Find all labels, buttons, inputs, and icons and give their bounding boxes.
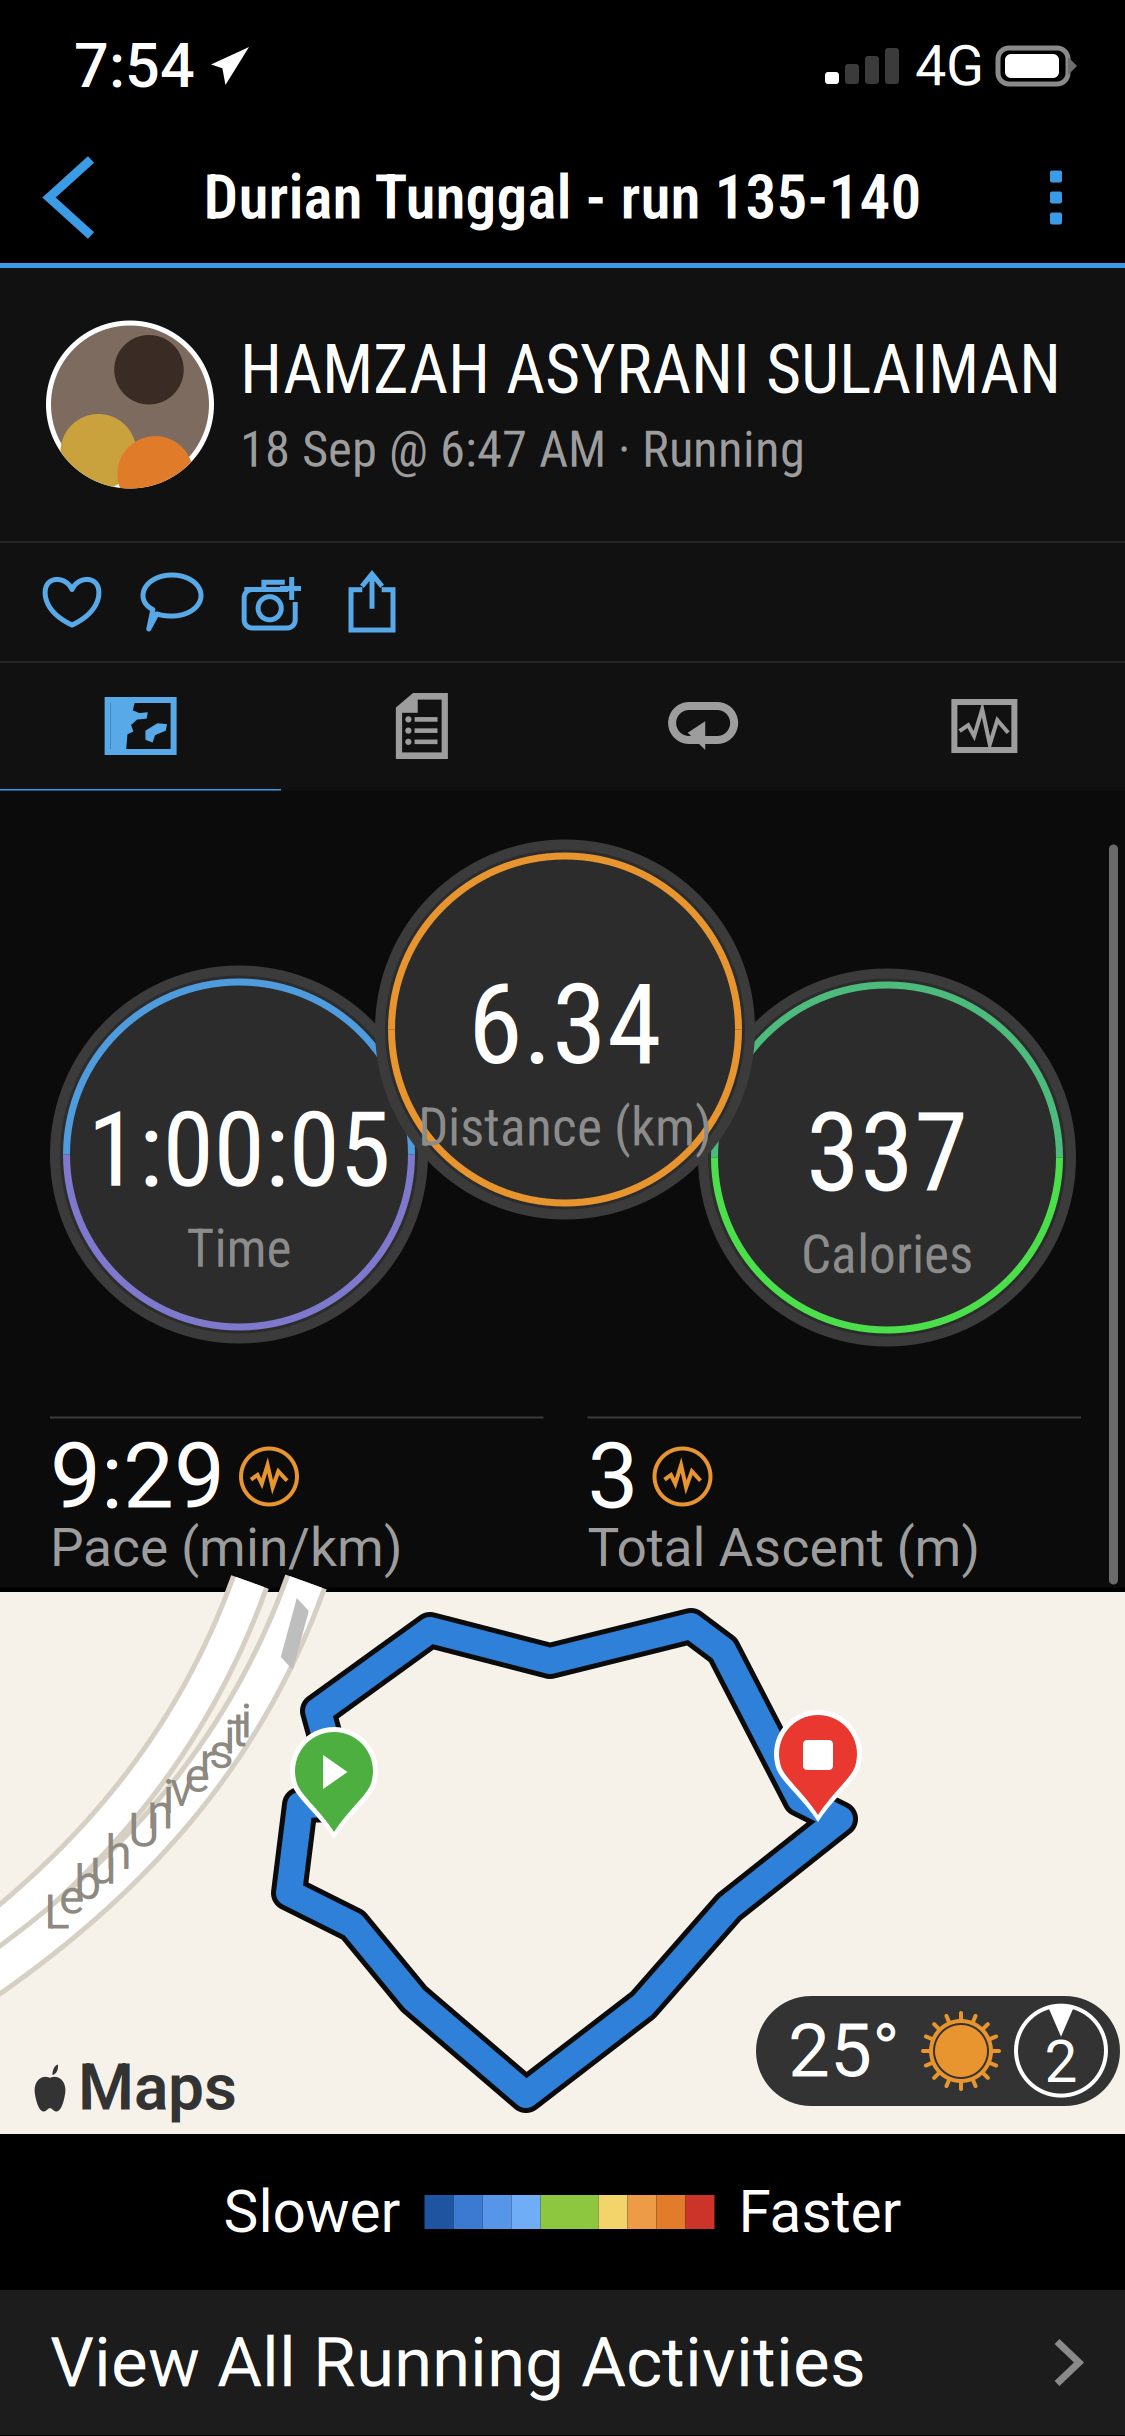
staticText: e xyxy=(184,1747,209,1804)
staticText: 6.34 xyxy=(468,960,662,1090)
staticText: 337 xyxy=(806,1089,968,1217)
staticText xyxy=(121,1809,133,1865)
staticText: b xyxy=(74,1855,101,1911)
staticText: 9:29 xyxy=(50,1423,225,1530)
button[interactable]: Charts xyxy=(844,663,1125,789)
staticText: Faster xyxy=(738,2178,901,2246)
staticText: i xyxy=(241,1693,253,1749)
staticText: i xyxy=(163,1768,175,1825)
button[interactable]: Laps xyxy=(562,663,844,789)
button[interactable]: More options xyxy=(1001,132,1111,263)
staticText: 7:54 xyxy=(74,30,195,102)
staticText: e xyxy=(59,1869,84,1925)
staticText: Pace (min/km) xyxy=(50,1516,403,1579)
staticText: L xyxy=(44,1884,70,1940)
staticText: HAMZAH ASYRANI SULAIMAN xyxy=(240,330,1061,410)
button[interactable]: Back xyxy=(14,132,124,263)
staticText: Total Ascent (m) xyxy=(587,1516,980,1579)
staticText: Calories xyxy=(801,1223,973,1286)
staticText: t xyxy=(231,1702,247,1758)
staticText: 4G xyxy=(915,33,984,99)
staticText: u xyxy=(90,1839,116,1895)
staticText: Time xyxy=(186,1217,291,1280)
staticText: View All Running Activities xyxy=(50,2322,866,2403)
staticText: 18 Sep @ 6:47 AM · Running xyxy=(240,420,805,479)
staticText: U xyxy=(128,1802,159,1858)
staticText: Distance (km) xyxy=(418,1096,712,1159)
button[interactable]: Add photo xyxy=(222,543,322,661)
staticText: 2 xyxy=(1044,2028,1077,2096)
staticText: 25° xyxy=(788,2007,900,2095)
button[interactable]: Like xyxy=(22,543,122,661)
staticText: Durian Tunggal - run 135-140 xyxy=(203,162,921,233)
button[interactable]: View All Running Activities xyxy=(0,2290,1125,2435)
staticText: Slower xyxy=(223,2178,400,2246)
staticText: Maps xyxy=(78,2050,237,2125)
button[interactable]: Map xyxy=(0,663,281,789)
button[interactable]: Details xyxy=(281,663,562,789)
staticText: v xyxy=(170,1761,193,1818)
button[interactable]: Share xyxy=(322,543,422,661)
staticText: h xyxy=(105,1824,131,1881)
staticText: n xyxy=(147,1784,174,1840)
staticText: 1:00:05 xyxy=(87,1089,390,1211)
staticText: s xyxy=(209,1724,234,1780)
button[interactable]: Comment xyxy=(122,543,222,661)
staticText: i xyxy=(224,1709,236,1765)
staticText: r xyxy=(199,1733,215,1789)
staticText: 3 xyxy=(587,1423,638,1530)
